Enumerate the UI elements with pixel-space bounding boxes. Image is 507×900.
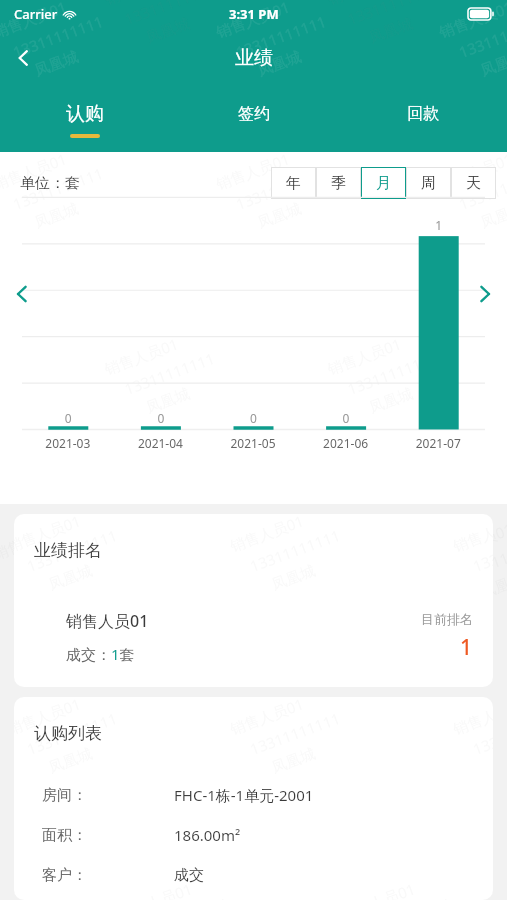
- staticText: 业绩: [235, 46, 273, 70]
- staticText: 业绩排名: [34, 540, 102, 561]
- staticText: 认购: [66, 102, 104, 126]
- button[interactable]: 年: [271, 167, 316, 199]
- button[interactable]: Previous period: [0, 272, 44, 316]
- staticText: 年: [286, 174, 301, 193]
- staticText: Carrier: [14, 5, 58, 23]
- staticText: 天: [466, 174, 481, 193]
- staticText: 目前排名: [421, 611, 473, 627]
- staticText: 成交: [174, 866, 204, 885]
- staticText: 销售人员01: [66, 610, 149, 632]
- staticText: 房间：: [42, 786, 87, 805]
- button[interactable]: 认购: [0, 88, 169, 152]
- staticText: 季: [331, 174, 346, 193]
- button[interactable]: 回款: [338, 88, 507, 152]
- staticText: 1: [460, 633, 473, 662]
- staticText: 单位：套: [20, 174, 80, 193]
- staticText: 签约: [238, 104, 270, 124]
- button[interactable]: 月: [361, 167, 406, 199]
- staticText: 面积：: [42, 826, 87, 845]
- button[interactable]: 签约: [169, 88, 338, 152]
- button[interactable]: 季: [316, 167, 361, 199]
- button[interactable]: Next period: [463, 272, 507, 316]
- button[interactable]: 周: [406, 167, 451, 199]
- staticText: 认购列表: [34, 723, 102, 744]
- staticText: 周: [421, 174, 436, 193]
- button[interactable]: 销售人员01: [14, 586, 493, 687]
- staticText: 回款: [407, 104, 439, 124]
- staticText: 3:31 PM: [229, 5, 279, 23]
- staticText: FHC-1栋-1单元-2001: [174, 785, 314, 805]
- staticText: 186.00m²: [174, 825, 241, 845]
- staticText: 客户：: [42, 866, 87, 885]
- button[interactable]: Back: [0, 34, 48, 82]
- staticText: 成交：1套: [66, 644, 135, 664]
- button[interactable]: 天: [451, 167, 496, 199]
- staticText: 月: [376, 174, 391, 193]
